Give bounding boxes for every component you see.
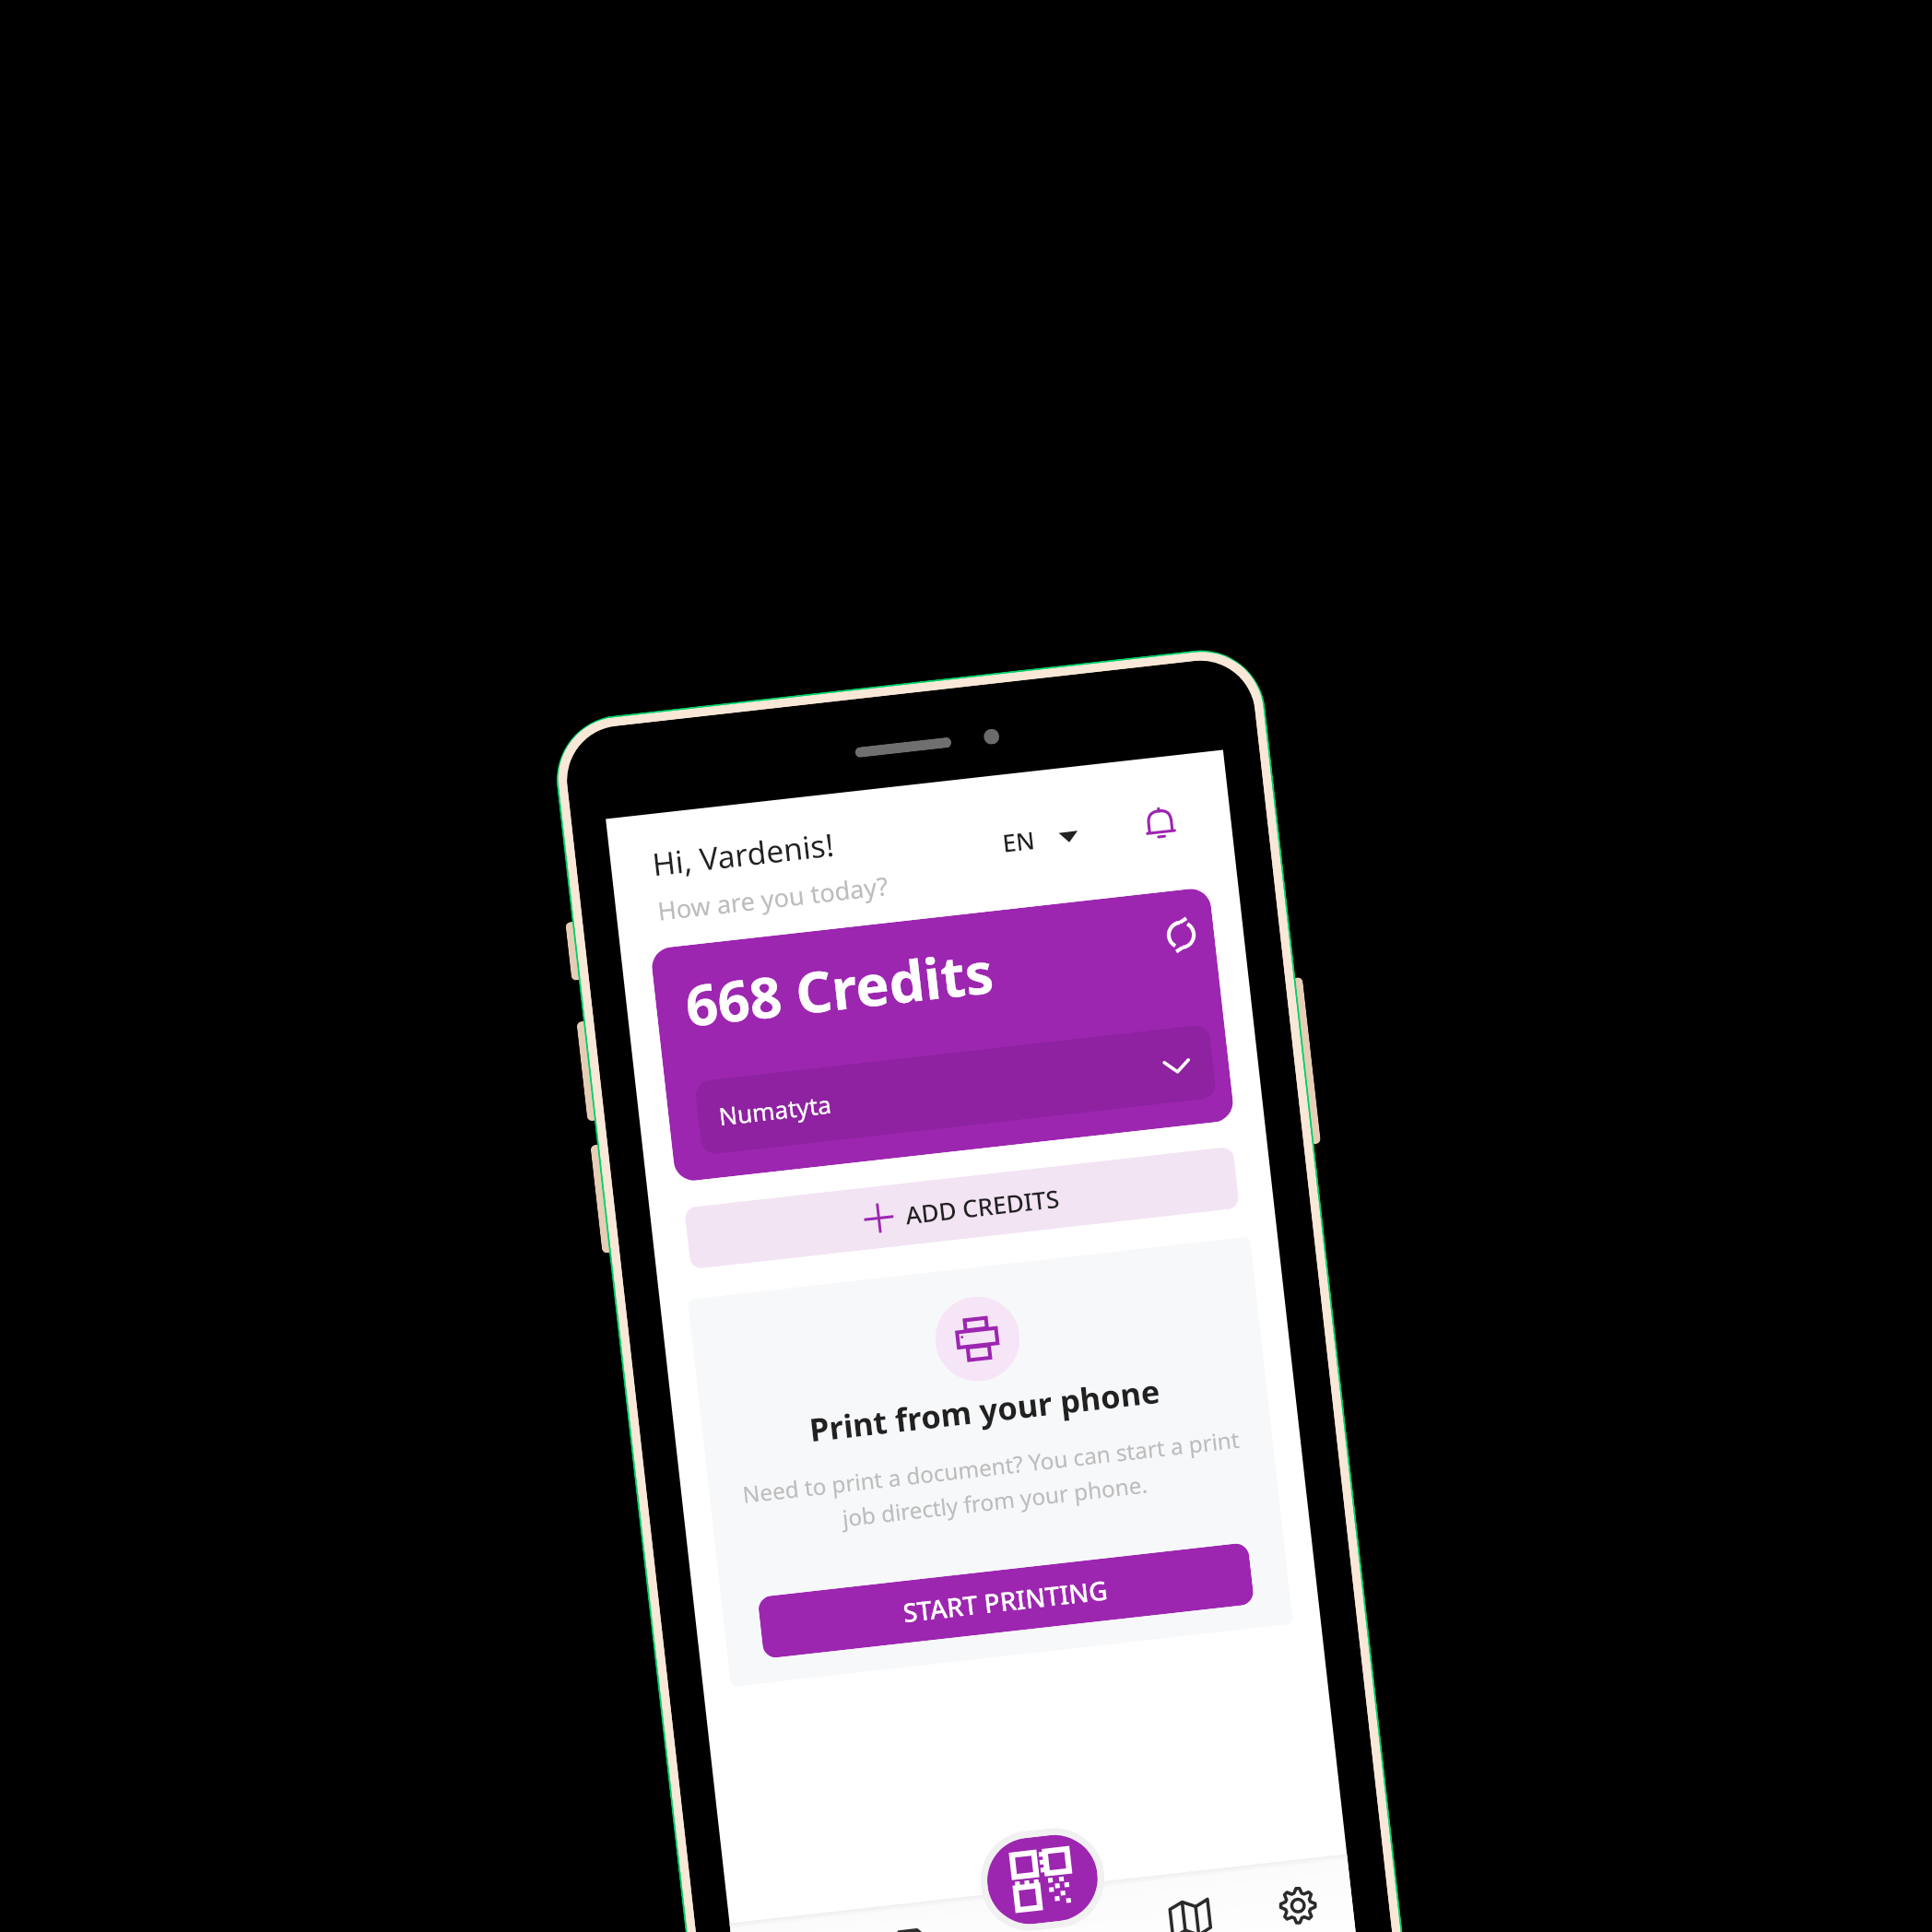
button[interactable]: Refresh xyxy=(1157,910,1206,960)
button[interactable]: Jobs xyxy=(858,1898,969,1932)
button[interactable]: Notifications xyxy=(1137,802,1183,847)
staticText: Hi, Vardenis! xyxy=(650,823,837,886)
button[interactable]: ADD CREDITS xyxy=(684,1146,1240,1270)
button[interactable]: START PRINTING xyxy=(757,1542,1255,1659)
button[interactable]: Numatyta xyxy=(694,1024,1217,1155)
staticText: Need to print a document? You can start … xyxy=(734,1423,1252,1545)
staticText: How are you today? xyxy=(656,867,891,928)
staticText: START PRINTING xyxy=(901,1572,1111,1629)
button[interactable]: Settings xyxy=(1242,1855,1353,1932)
button[interactable]: Scan QR code xyxy=(983,1831,1102,1929)
button[interactable]: EN xyxy=(1001,818,1080,859)
button[interactable]: Home xyxy=(748,1910,859,1932)
staticText: Numatyta xyxy=(717,1087,834,1132)
staticText: ADD CREDITS xyxy=(904,1182,1062,1231)
staticText: 668 Credits xyxy=(681,932,998,1042)
button[interactable]: Map xyxy=(1134,1867,1245,1932)
staticText: EN xyxy=(1001,823,1037,859)
staticText: Print from your phone xyxy=(807,1368,1162,1450)
button[interactable]: 668 Credits xyxy=(650,887,1235,1183)
